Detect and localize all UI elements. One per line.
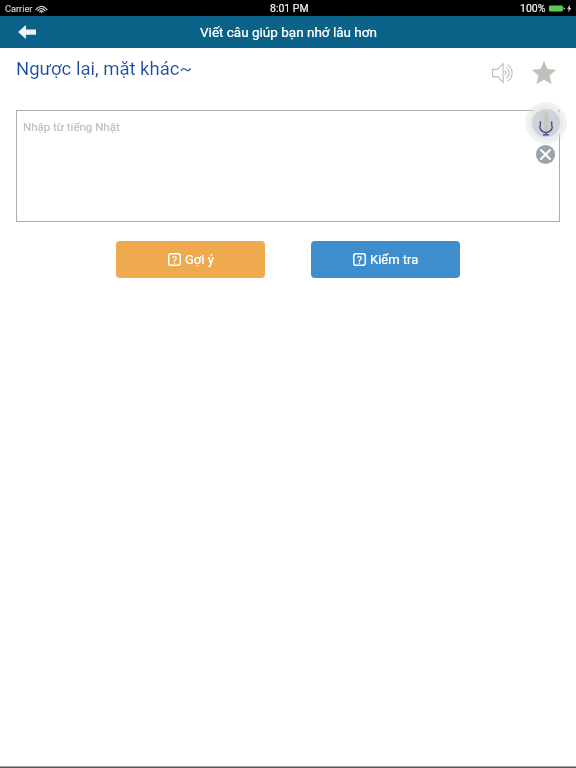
staticText: Nhập từ tiếng Nhật xyxy=(23,120,120,133)
button[interactable]: Voice input xyxy=(524,101,568,145)
staticText: Viết câu giúp bạn nhớ lâu hơn xyxy=(200,24,377,40)
staticText: ? xyxy=(172,254,177,266)
button[interactable]: ? xyxy=(311,241,460,278)
staticText: Gợi ý xyxy=(185,252,214,267)
staticText: ? xyxy=(357,254,362,266)
button[interactable]: ? xyxy=(116,241,265,278)
staticText: 100% xyxy=(520,2,546,14)
button[interactable]: Favorite xyxy=(526,54,562,92)
staticText: Carrier xyxy=(5,3,33,14)
button[interactable]: Nhập từ tiếng Nhật xyxy=(16,110,560,222)
button[interactable]: Back xyxy=(0,16,53,48)
staticText: Ngược lại, mặt khác~ xyxy=(16,58,192,80)
button[interactable]: Clear xyxy=(535,144,556,165)
staticText: 8:01 PM xyxy=(270,2,309,14)
button[interactable]: Play audio xyxy=(485,54,521,92)
staticText: Kiểm tra xyxy=(370,252,419,267)
